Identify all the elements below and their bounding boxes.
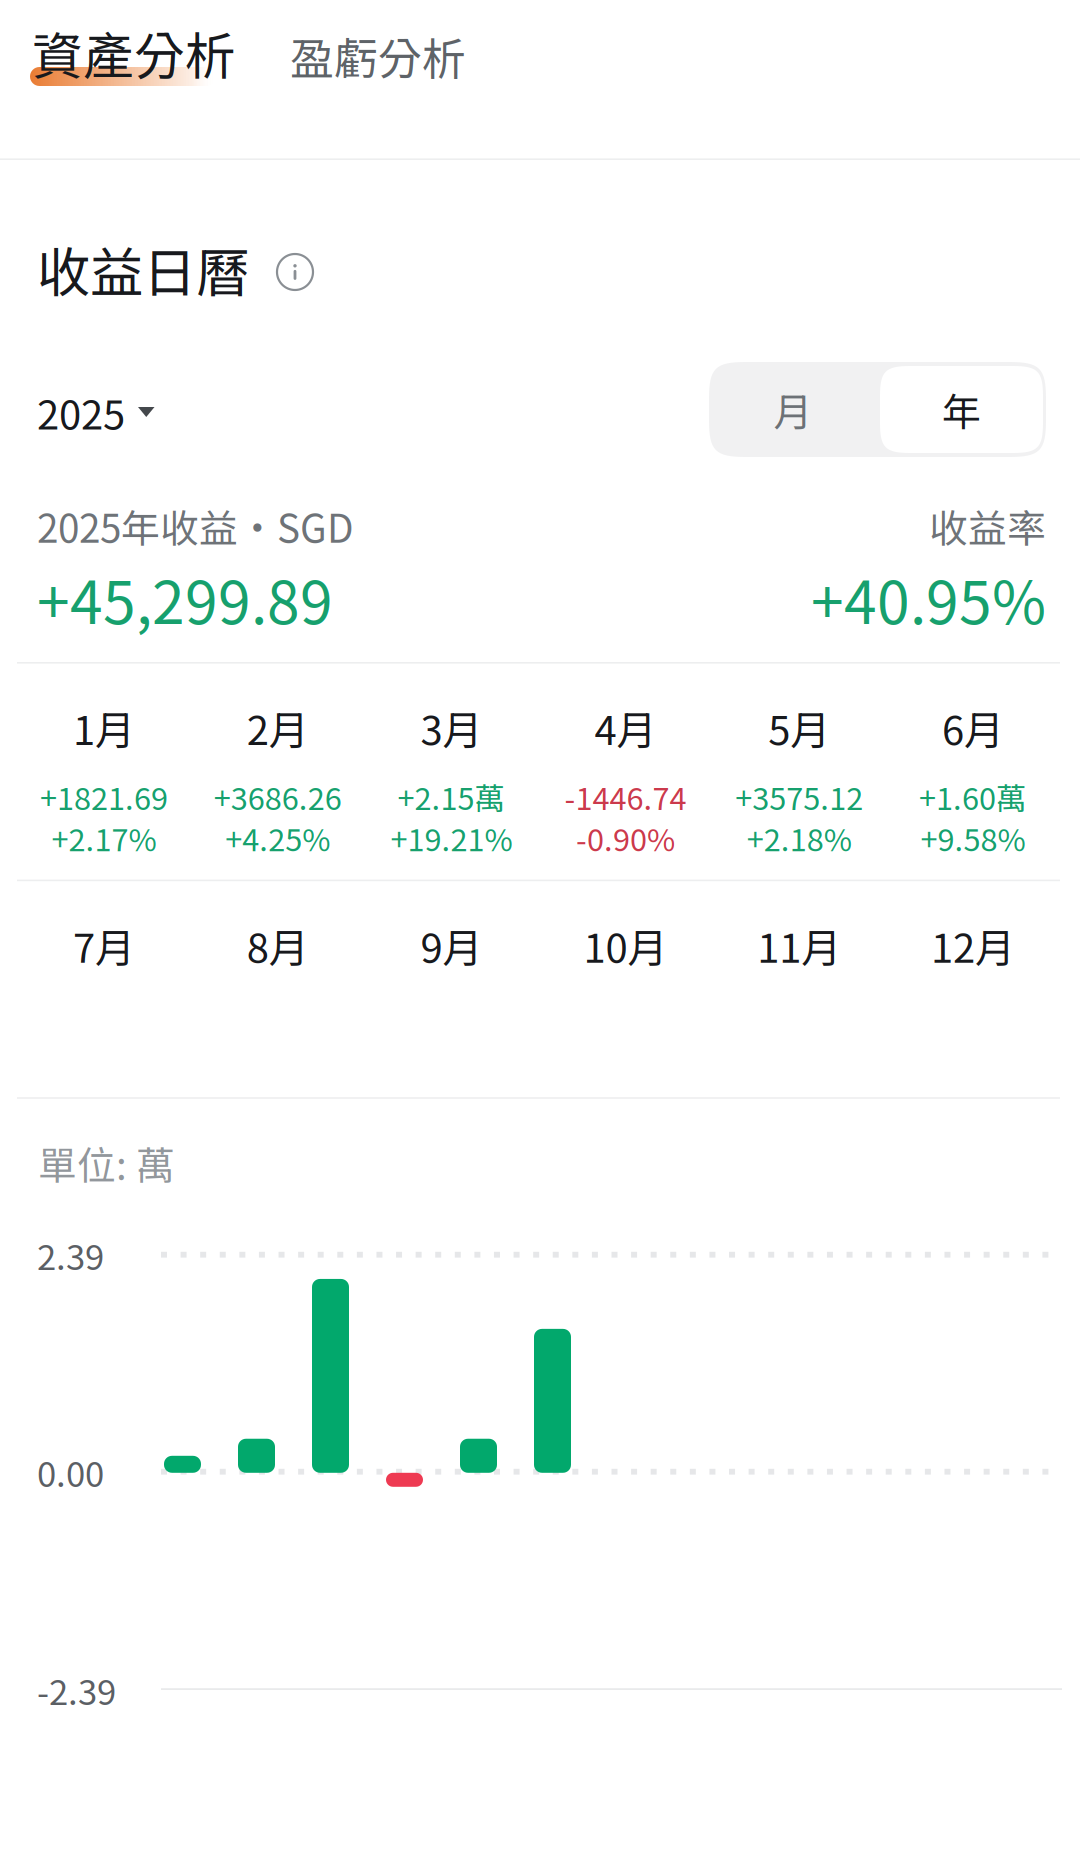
button[interactable]: 5月 (712, 664, 886, 880)
button[interactable]: 收益日曆說明 (249, 248, 313, 290)
staticText: 12月 (931, 916, 1015, 974)
staticText: 年 (942, 381, 981, 437)
button[interactable]: 2月 (191, 664, 365, 880)
staticText: 單位: 萬 (38, 1135, 175, 1191)
button[interactable]: 3月 (365, 664, 538, 880)
staticText: 3月 (421, 699, 483, 756)
staticText: +40.95% (811, 556, 1046, 641)
button[interactable]: 盈虧分析 (260, 0, 466, 158)
staticText: 1月 (73, 699, 135, 756)
staticText: 2.39 (37, 1230, 104, 1280)
staticText: 2月 (247, 699, 309, 756)
staticText: +2.17% (51, 816, 156, 860)
button[interactable]: 4月 (538, 664, 712, 880)
staticText: 2025 (37, 383, 125, 441)
staticText: +3686.26 (214, 774, 342, 819)
staticText: +19.21% (391, 816, 513, 860)
staticText: -0.90% (576, 816, 675, 860)
staticText: 8月 (247, 916, 309, 974)
staticText: 11月 (757, 916, 841, 974)
staticText: 7月 (73, 916, 135, 974)
staticText: 收益日曆 (37, 230, 249, 308)
staticText: 月 (773, 381, 812, 437)
staticText: +2.15萬 (398, 774, 506, 819)
staticText: 10月 (583, 916, 667, 974)
button[interactable]: 11月 (712, 881, 886, 1097)
staticText: 9月 (421, 916, 483, 974)
staticText: +9.58% (920, 816, 1025, 860)
staticText: +2.18% (747, 816, 852, 860)
button[interactable]: 12月 (886, 881, 1060, 1097)
button[interactable]: 月 (709, 362, 877, 457)
button[interactable]: 10月 (538, 881, 712, 1097)
button[interactable]: 1月 (17, 664, 191, 880)
staticText: 盈虧分析 (290, 24, 466, 88)
button[interactable]: 8月 (191, 881, 365, 1097)
button[interactable]: 7月 (17, 881, 191, 1097)
staticText: 4月 (594, 699, 656, 756)
staticText: 5月 (768, 699, 830, 756)
button[interactable]: 6月 (886, 664, 1060, 880)
staticText: +1821.69 (40, 774, 168, 819)
staticText: -2.39 (37, 1665, 116, 1715)
staticText: 2025年收益·SGD (37, 498, 354, 554)
staticText: +1.60萬 (919, 774, 1027, 819)
staticText: -1446.74 (564, 774, 686, 819)
staticText: 0.00 (37, 1447, 104, 1497)
staticText: 6月 (942, 699, 1004, 756)
staticText: +45,299.89 (37, 556, 333, 641)
button[interactable]: 年 (877, 362, 1046, 457)
staticText: +4.25% (225, 816, 330, 860)
button[interactable]: 9月 (365, 881, 538, 1097)
staticText: 資產分析 (32, 16, 236, 89)
staticText: +3575.12 (735, 774, 863, 819)
staticText: 收益率 (929, 498, 1046, 554)
button[interactable]: 資產分析 (0, 0, 260, 158)
button[interactable]: 2025 (0, 362, 172, 457)
